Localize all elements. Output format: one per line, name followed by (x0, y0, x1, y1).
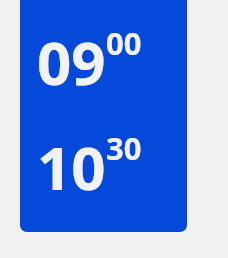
staticText: 10 (37, 126, 106, 208)
staticText: 30 (106, 127, 142, 169)
button[interactable]: 09 (37, 21, 142, 103)
button[interactable]: 10 (37, 126, 142, 208)
button[interactable]: 09 (20, 0, 187, 232)
staticText: 09 (37, 21, 106, 103)
staticText: 00 (106, 22, 142, 64)
